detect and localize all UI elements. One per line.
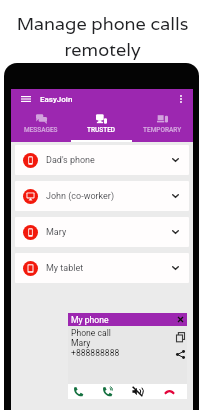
staticText: My phone (71, 315, 109, 325)
staticText: Manage phone calls remotely (0, 12, 205, 61)
button[interactable]: Open navigation menu (15, 89, 37, 108)
button[interactable]: More options (169, 89, 192, 108)
staticText: Dad's phone (46, 155, 95, 166)
button[interactable]: Transfer call (102, 386, 113, 397)
button[interactable]: My tablet (15, 253, 189, 283)
staticText: Mary (71, 338, 91, 348)
button[interactable]: MESSAGES (11, 110, 71, 142)
button[interactable]: Close (174, 313, 187, 326)
staticText: Phone call (71, 328, 111, 338)
staticText: TRUSTED (87, 126, 116, 134)
staticText: My tablet (46, 263, 84, 274)
button[interactable]: Hang up (164, 386, 175, 397)
staticText: MESSAGES (24, 126, 58, 134)
button[interactable]: John (co-worker) (15, 181, 189, 211)
button[interactable]: TRUSTED (71, 110, 132, 142)
button[interactable]: Answer (73, 386, 84, 397)
button[interactable]: Dad's phone (15, 145, 189, 175)
button[interactable]: TEMPORARY (132, 110, 193, 142)
staticText: EasyJoin (40, 95, 73, 108)
staticText: TEMPORARY (143, 126, 182, 134)
button[interactable]: Copy (173, 330, 187, 344)
button[interactable]: Share (173, 347, 187, 361)
staticText: +888888888 (71, 348, 120, 358)
staticText: John (co-worker) (46, 191, 115, 202)
button[interactable]: Mute (132, 386, 143, 397)
staticText: Mary (46, 227, 67, 238)
button[interactable]: Mary (15, 217, 189, 247)
